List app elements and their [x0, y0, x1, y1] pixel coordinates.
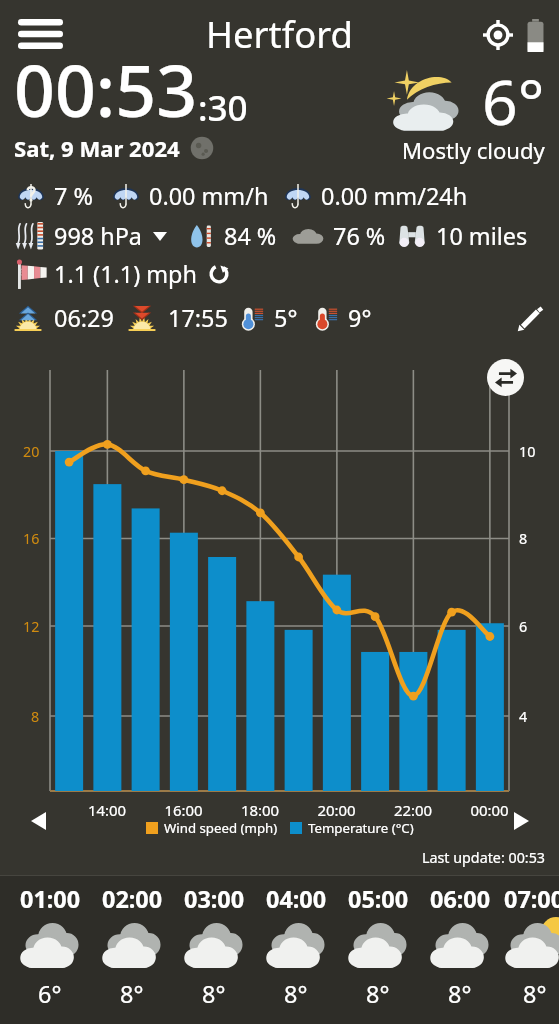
- staticText: 8°: [284, 978, 308, 1008]
- staticText: 5°: [274, 302, 298, 334]
- button[interactable]: 06:00: [419, 875, 501, 1008]
- staticText: 10 miles: [436, 220, 528, 252]
- button[interactable]: Menu: [14, 12, 66, 56]
- button[interactable]: 02:00: [91, 875, 173, 1008]
- button[interactable]: 04:00: [255, 875, 337, 1008]
- staticText: 05:00: [348, 883, 409, 915]
- button[interactable]: Pressure unit: [150, 226, 170, 246]
- staticText: 1.1 (1.1) mph: [54, 258, 197, 290]
- staticText: 03:00: [184, 883, 245, 915]
- staticText: 7 %: [54, 180, 93, 212]
- staticText: 06:29: [54, 302, 114, 334]
- staticText: 01:00: [20, 883, 81, 915]
- button[interactable]: 01:00: [9, 875, 91, 1008]
- staticText: Temperature (°C): [308, 819, 414, 837]
- staticText: 00:53: [14, 41, 198, 138]
- button[interactable]: Swap axes: [487, 359, 524, 396]
- staticText: Hertford: [206, 9, 353, 59]
- staticText: 04:00: [266, 883, 327, 915]
- staticText: 8°: [523, 978, 547, 1008]
- button[interactable]: Refresh: [205, 260, 233, 288]
- staticText: 06:00: [430, 883, 491, 915]
- button[interactable]: 03:00: [173, 875, 255, 1008]
- staticText: 6°: [482, 58, 545, 143]
- button[interactable]: Current location: [480, 17, 516, 53]
- staticText: Mostly cloudy: [402, 135, 545, 165]
- staticText: 76 %: [333, 220, 386, 252]
- button[interactable]: Next: [505, 805, 537, 837]
- button[interactable]: Edit: [511, 300, 549, 338]
- staticText: 8°: [202, 978, 226, 1008]
- button[interactable]: Previous: [22, 805, 54, 837]
- staticText: Last update: 00:53: [422, 848, 545, 867]
- staticText: 17:55: [168, 302, 228, 334]
- staticText: Sat, 9 Mar 2024: [14, 133, 180, 163]
- button[interactable]: 07:00: [501, 875, 559, 1008]
- staticText: 07:00: [504, 883, 559, 915]
- staticText: :30: [198, 83, 248, 131]
- button[interactable]: 05:00: [337, 875, 419, 1008]
- staticText: 8°: [448, 978, 472, 1008]
- staticText: 6°: [38, 978, 62, 1008]
- staticText: 0.00 mm/24h: [321, 180, 468, 212]
- staticText: Wind speed (mph): [164, 819, 278, 837]
- staticText: 9°: [348, 302, 372, 334]
- staticText: 84 %: [224, 220, 277, 252]
- staticText: 8°: [366, 978, 390, 1008]
- staticText: 8°: [120, 978, 144, 1008]
- staticText: 02:00: [102, 883, 163, 915]
- staticText: 0.00 mm/h: [149, 180, 269, 212]
- staticText: 998 hPa: [54, 220, 142, 252]
